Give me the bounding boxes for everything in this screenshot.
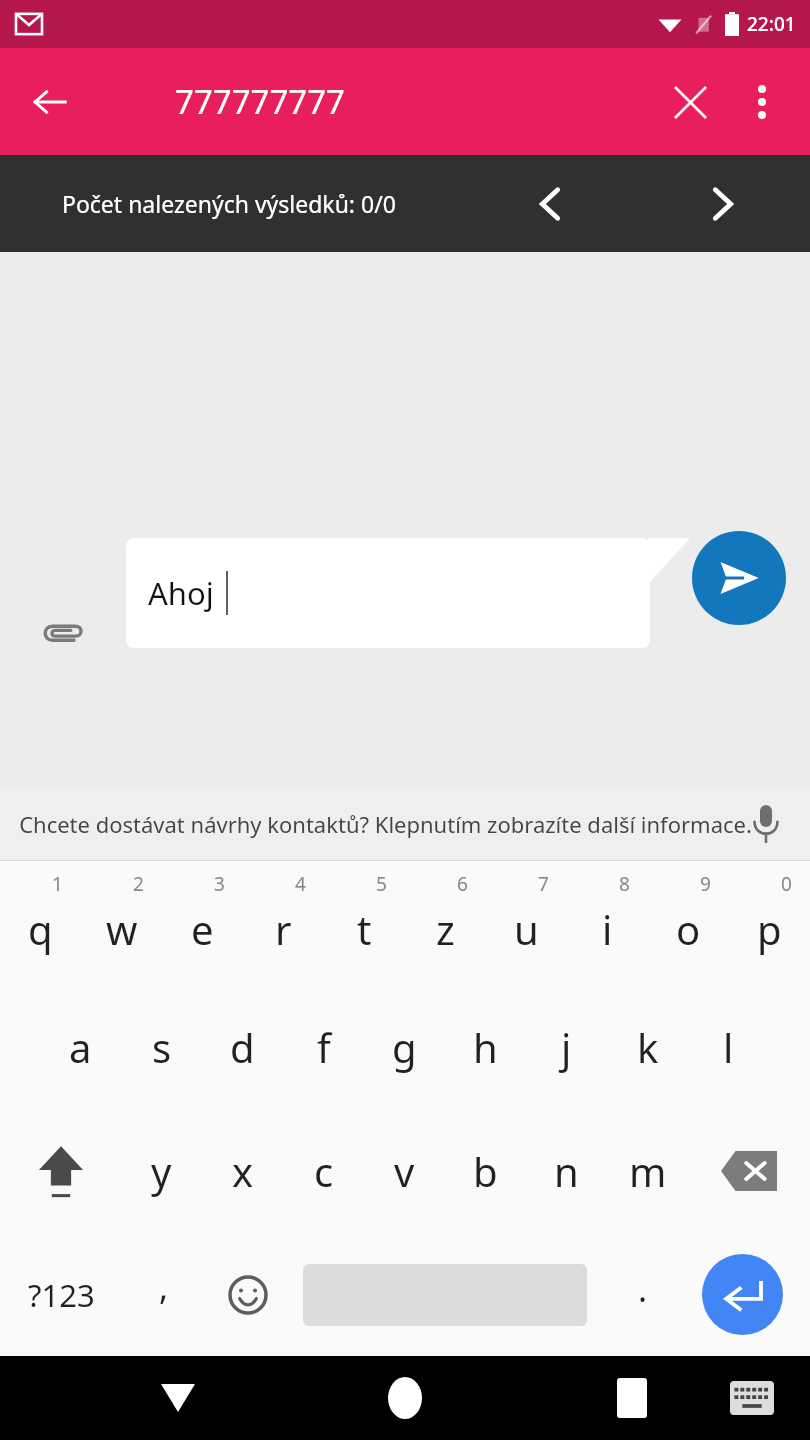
button[interactable]: Next result — [688, 169, 758, 239]
button[interactable]: j — [526, 985, 607, 1109]
button[interactable]: x — [202, 1109, 283, 1233]
staticText: 8 — [619, 871, 630, 897]
button[interactable]: k — [607, 985, 688, 1109]
button[interactable]: Backspace — [688, 1109, 810, 1233]
button[interactable]: 3 — [162, 861, 243, 985]
staticText: z — [436, 902, 455, 956]
staticText: h — [473, 1020, 498, 1074]
button[interactable]: Back — [138, 1358, 218, 1438]
staticText: 9 — [700, 871, 711, 897]
staticText: 7 — [538, 871, 549, 897]
staticText: v — [394, 1144, 415, 1198]
staticText: 777777777 — [175, 79, 345, 124]
staticText: Počet nalezených výsledků: 0/0 — [62, 188, 396, 219]
staticText: c — [314, 1144, 334, 1198]
staticText: s — [152, 1020, 172, 1074]
button[interactable]: m — [607, 1109, 688, 1233]
staticText: d — [230, 1020, 255, 1074]
button[interactable]: 2 — [81, 861, 162, 985]
staticText: 4 — [295, 871, 306, 897]
staticText: 3 — [214, 871, 225, 897]
button[interactable]: Shift — [0, 1109, 121, 1233]
button[interactable]: y — [121, 1109, 202, 1233]
staticText: y — [151, 1144, 172, 1198]
button[interactable]: Switch keyboard — [712, 1358, 792, 1438]
button[interactable]: 5 — [324, 861, 405, 985]
button[interactable]: Ahoj — [126, 538, 690, 648]
staticText: x — [232, 1144, 254, 1198]
staticText: f — [317, 1020, 331, 1074]
button[interactable]: g — [364, 985, 445, 1109]
staticText: 6 — [457, 871, 468, 897]
button[interactable]: v — [364, 1109, 445, 1233]
button[interactable]: Attach — [20, 592, 104, 676]
button[interactable]: Send — [692, 531, 786, 625]
button[interactable]: . — [600, 1233, 686, 1356]
staticText: 1 — [52, 871, 63, 897]
button[interactable]: Space — [290, 1233, 600, 1356]
button[interactable]: 0 — [729, 861, 810, 985]
staticText: r — [275, 902, 292, 956]
staticText: . — [638, 1266, 648, 1312]
button[interactable]: b — [445, 1109, 526, 1233]
button[interactable]: d — [202, 985, 283, 1109]
staticText: n — [554, 1144, 579, 1198]
button[interactable]: More options — [726, 66, 798, 138]
button[interactable]: h — [445, 985, 526, 1109]
button[interactable]: 9 — [648, 861, 729, 985]
staticText: ?123 — [28, 1274, 95, 1316]
staticText: 22:01 — [747, 11, 796, 37]
button[interactable]: n — [526, 1109, 607, 1233]
staticText: l — [723, 1020, 734, 1074]
button[interactable]: Previous result — [515, 169, 585, 239]
staticText: 0 — [781, 871, 792, 897]
button[interactable]: c — [283, 1109, 364, 1233]
staticText: t — [357, 902, 372, 956]
button[interactable]: Emoji — [206, 1233, 290, 1356]
button[interactable]: Voice input — [736, 794, 796, 854]
staticText: 5 — [376, 871, 387, 897]
staticText: q — [28, 902, 53, 956]
staticText: 2 — [133, 871, 144, 897]
staticText: o — [676, 902, 701, 956]
staticText: Chcete dostávat návrhy kontaktů? Klepnut… — [19, 809, 752, 839]
button[interactable]: Back — [14, 66, 86, 138]
button[interactable]: 4 — [243, 861, 324, 985]
button[interactable]: Home — [365, 1358, 445, 1438]
button[interactable]: 6 — [405, 861, 486, 985]
staticText: g — [392, 1020, 417, 1074]
button[interactable]: Chcete dostávat návrhy kontaktů? Klepnut… — [0, 786, 810, 861]
staticText: m — [629, 1144, 667, 1198]
staticText: p — [757, 902, 782, 956]
button[interactable]: Close search — [654, 66, 726, 138]
staticText: u — [514, 902, 539, 956]
staticText: Ahoj — [148, 572, 214, 614]
staticText: j — [561, 1020, 572, 1074]
staticText: w — [106, 902, 138, 956]
button[interactable]: 7 — [486, 861, 567, 985]
staticText: a — [69, 1020, 92, 1074]
button[interactable]: , — [122, 1233, 206, 1356]
staticText: e — [191, 902, 214, 956]
staticText: k — [637, 1020, 659, 1074]
button[interactable]: ?123 — [0, 1233, 122, 1356]
staticText: b — [473, 1144, 498, 1198]
button[interactable]: Enter — [686, 1233, 810, 1356]
staticText: i — [602, 902, 613, 956]
button[interactable]: l — [688, 985, 769, 1109]
button[interactable]: s — [121, 985, 202, 1109]
button[interactable]: 8 — [567, 861, 648, 985]
button[interactable]: a — [40, 985, 121, 1109]
button[interactable]: 1 — [0, 861, 81, 985]
staticText: , — [159, 1264, 169, 1310]
button[interactable]: Recents — [592, 1358, 672, 1438]
button[interactable]: f — [283, 985, 364, 1109]
